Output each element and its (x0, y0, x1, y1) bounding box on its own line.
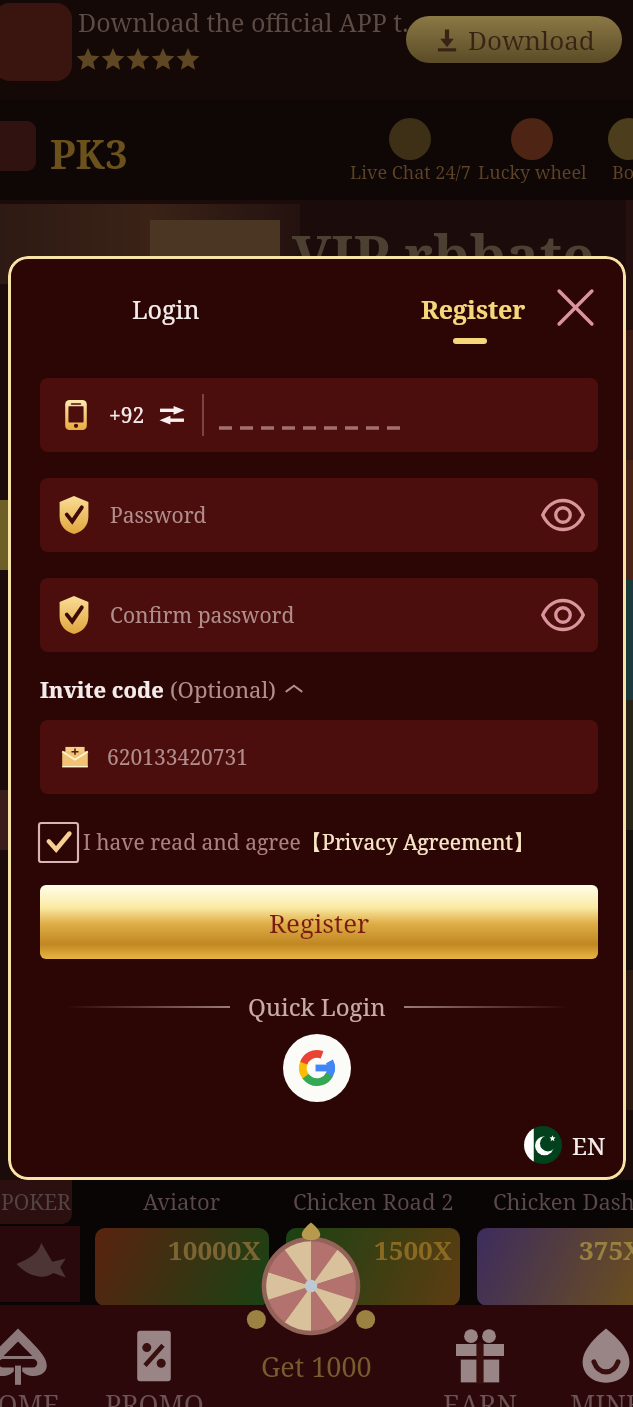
staticText: Register (421, 292, 526, 326)
staticText: Register (269, 905, 370, 940)
staticText: VIP rbbate (292, 216, 595, 292)
staticText: (Optional) (170, 674, 276, 704)
button[interactable]: EARN (418, 1305, 542, 1407)
button[interactable]: Invite code (40, 670, 304, 708)
staticText: Login (132, 292, 200, 326)
staticText: Invite code (40, 674, 170, 704)
staticText: Live Chat 24/7 (350, 160, 471, 185)
button[interactable]: POKER (0, 1180, 72, 1224)
staticText: I have read and agree (83, 828, 301, 857)
button[interactable]: Register (40, 885, 598, 959)
button[interactable]: Chicken Dash (477, 1180, 633, 1306)
button[interactable]: 620133420731 (40, 720, 598, 794)
staticText: Download (468, 22, 595, 57)
button[interactable]: PROMO (92, 1305, 216, 1407)
button[interactable]: +92 (40, 378, 598, 452)
button[interactable]: Login (126, 286, 206, 332)
button[interactable]: Aviator (95, 1180, 269, 1306)
staticText: EARN (443, 1386, 518, 1407)
button[interactable]: Download (406, 16, 622, 63)
button[interactable]: Password (40, 478, 598, 552)
staticText: Aviator (143, 1186, 221, 1216)
button[interactable]: Bon (590, 118, 633, 185)
staticText: Chicken Dash (493, 1186, 633, 1216)
button[interactable]: HOME (0, 1305, 80, 1407)
staticText: Chicken Road 2 (293, 1186, 454, 1216)
staticText: Download the official APP t... (78, 5, 421, 39)
staticText: Confirm password (110, 601, 295, 630)
button[interactable]: Live Chat 24/7 (348, 118, 472, 185)
button[interactable]: Show password (534, 486, 592, 544)
staticText: HOME (0, 1386, 60, 1407)
staticText: Get 1000 (261, 1348, 372, 1385)
button[interactable]: Show confirm password (534, 586, 592, 644)
button[interactable]: Chicken Road 2 (286, 1180, 460, 1306)
staticText: 【Privacy Agreement】 (301, 828, 534, 857)
staticText: Lucky wheel (478, 160, 587, 185)
staticText: 375X (579, 1232, 633, 1267)
button[interactable]: Close (544, 276, 606, 338)
staticText: 1500X (374, 1232, 452, 1267)
staticText: Quick Login (248, 990, 386, 1023)
button[interactable]: Get 1000 lucky wheel (255, 1230, 367, 1342)
button[interactable]: Lucky wheel (474, 118, 590, 185)
staticText: +92 (109, 401, 145, 430)
button[interactable]: I have read and agree (39, 823, 534, 862)
staticText: PROMO (105, 1386, 204, 1407)
staticText: EN (572, 1129, 606, 1162)
staticText: PK3 (50, 126, 128, 180)
button[interactable]: Register (412, 286, 534, 344)
staticText: Bon (612, 160, 633, 185)
staticText: POKER (1, 1188, 71, 1217)
staticText: MINE (570, 1386, 633, 1407)
button[interactable]: EN (520, 1122, 610, 1168)
staticText: Password (110, 501, 207, 530)
staticText: 620133420731 (107, 743, 248, 772)
button[interactable]: MINE (544, 1305, 633, 1407)
button[interactable]: Sign in with Google (283, 1034, 351, 1102)
button[interactable]: Confirm password (40, 578, 598, 652)
staticText: 10000X (168, 1232, 261, 1267)
